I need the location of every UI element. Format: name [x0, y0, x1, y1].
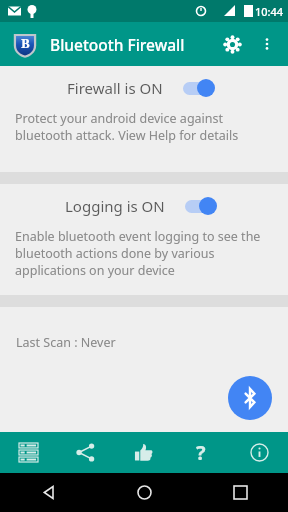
staticText: 10:44 [255, 4, 284, 19]
staticText: Logging is ON [65, 196, 165, 216]
button[interactable]: Back [0, 473, 96, 512]
button[interactable]: Home [96, 473, 192, 512]
staticText: Last Scan : Never [16, 334, 116, 351]
button[interactable]: Recents [192, 473, 288, 512]
staticText: Enable bluetooth event logging to see th… [15, 228, 261, 279]
staticText: Firewall is ON [67, 78, 163, 98]
button[interactable]: About [230, 432, 288, 473]
staticText: Bluetooth Firewall [50, 34, 185, 55]
button[interactable]: More options [250, 27, 284, 61]
staticText: Protect your android device against blue… [15, 110, 239, 144]
staticText: ? [196, 439, 206, 466]
button[interactable]: Firewall is ON [0, 66, 288, 172]
button[interactable]: Log list [0, 432, 57, 473]
staticText: B [21, 34, 30, 52]
button[interactable]: Settings [214, 26, 250, 62]
button[interactable]: Rate [114, 432, 172, 473]
button[interactable]: Share [57, 432, 114, 473]
button[interactable]: Help [172, 432, 230, 473]
button[interactable]: Logging is ON [0, 184, 288, 295]
button[interactable]: Scan bluetooth [228, 376, 272, 420]
